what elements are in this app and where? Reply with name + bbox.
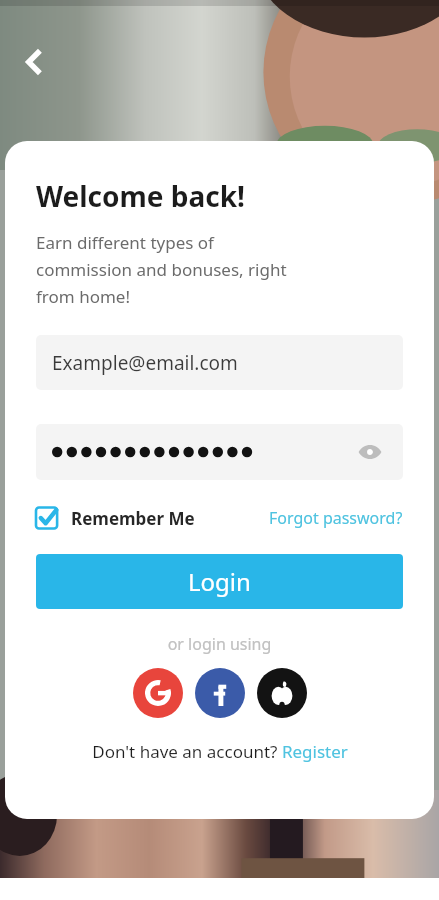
button[interactable]: Back: [12, 40, 56, 84]
button[interactable]: Don't have an account? Register: [36, 740, 403, 763]
button[interactable]: Login: [36, 554, 403, 609]
button[interactable]: Sign in with Google: [133, 668, 183, 718]
staticText: Remember Me: [71, 507, 195, 530]
staticText: Don't have an account? Register: [92, 740, 348, 763]
button[interactable]: Sign in with Facebook: [195, 668, 245, 718]
staticText: Example@email.com: [52, 350, 238, 376]
staticText: Earn different types of commission and b…: [36, 231, 287, 308]
button[interactable]: Forgot password?: [269, 507, 403, 529]
button[interactable]: Sign in with Apple: [257, 668, 307, 718]
button[interactable]: Show password: [353, 435, 387, 469]
button[interactable]: Remember Me: [36, 506, 195, 530]
staticText: Forgot password?: [269, 507, 403, 529]
staticText: Welcome back!: [36, 177, 245, 215]
staticText: or login using: [36, 633, 403, 655]
button[interactable]: Example@email.com: [36, 335, 403, 390]
button[interactable]: Show password: [36, 424, 403, 480]
staticText: Login: [188, 565, 251, 598]
